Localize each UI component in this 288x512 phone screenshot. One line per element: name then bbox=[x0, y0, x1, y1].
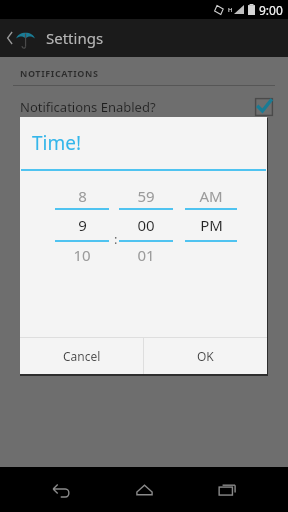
staticText: : bbox=[114, 230, 118, 248]
button[interactable]: 00 bbox=[119, 210, 173, 240]
button[interactable]: OK bbox=[144, 338, 267, 374]
staticText: H bbox=[228, 6, 233, 14]
button[interactable]: Cancel bbox=[20, 338, 143, 374]
button[interactable]: 9 bbox=[55, 210, 109, 240]
staticText: Cancel bbox=[63, 348, 101, 364]
button[interactable]: Notifications enabled checkbox bbox=[254, 97, 274, 117]
staticText: 59 bbox=[137, 186, 155, 206]
staticText: 9:00 bbox=[259, 2, 283, 18]
staticText: AM bbox=[199, 186, 223, 206]
button[interactable]: Home bbox=[122, 468, 166, 512]
staticText: PM bbox=[200, 215, 223, 235]
staticText: 00 bbox=[137, 215, 155, 235]
button[interactable]: Back bbox=[39, 468, 83, 512]
staticText: Notifications Enabled? bbox=[20, 98, 156, 116]
staticText: 8 bbox=[78, 186, 87, 206]
staticText: 9 bbox=[78, 215, 87, 235]
button[interactable]: PM bbox=[185, 210, 237, 240]
button[interactable]: Navigate up bbox=[5, 27, 39, 49]
button[interactable]: Recent apps bbox=[205, 468, 249, 512]
staticText: 10 bbox=[73, 245, 91, 265]
staticText: OK bbox=[197, 348, 214, 364]
staticText: NOTIFICATIONS bbox=[20, 67, 99, 79]
staticText: 01 bbox=[137, 245, 155, 265]
staticText: Settings bbox=[46, 28, 104, 48]
staticText: Time! bbox=[32, 130, 82, 156]
